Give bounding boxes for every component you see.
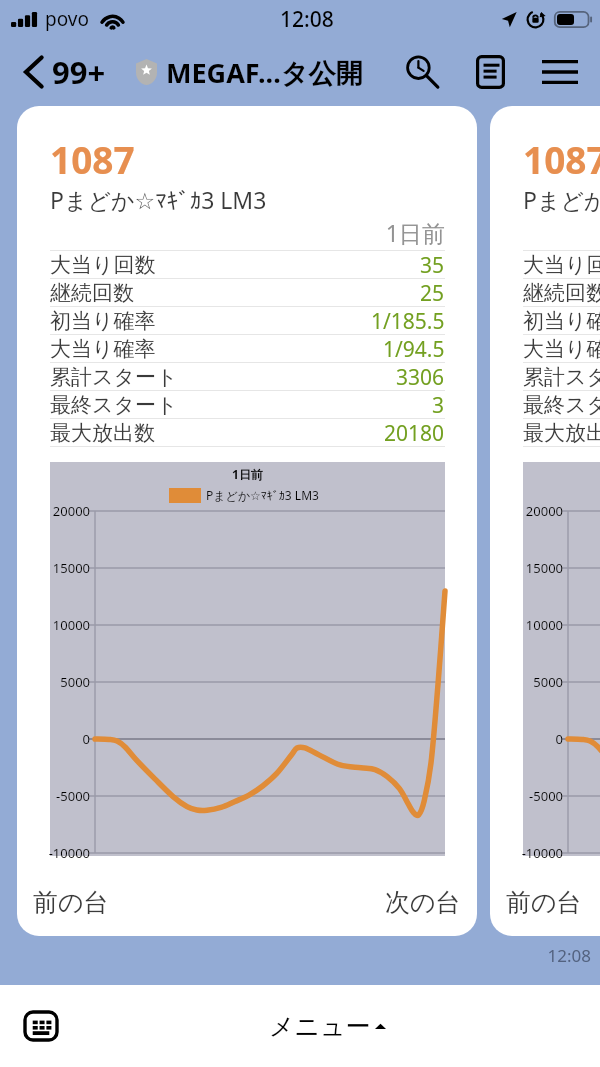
staticText: 20000 (41, 502, 90, 520)
staticText: -10000 (514, 844, 563, 862)
staticText: Pまどか☆ﾏｷﾞｶ3 LM3 (523, 184, 600, 215)
staticText: 1087 (50, 134, 135, 184)
staticText: 20180 (384, 419, 445, 446)
button[interactable]: Search (397, 47, 447, 97)
staticText: 大当り回数 (523, 252, 600, 278)
staticText: -5000 (514, 787, 563, 805)
staticText: 1/185.5 (371, 307, 445, 334)
button[interactable]: 前の台 (29, 879, 113, 926)
staticText: Pまどか☆ﾏｷﾞｶ3 LM3 (50, 184, 267, 215)
staticText: -5000 (41, 787, 90, 805)
staticText: 初当り確率 (523, 308, 600, 334)
staticText: povo (45, 6, 89, 32)
staticText: 前の台 (506, 887, 582, 918)
staticText: 大当り確率 (523, 336, 600, 362)
staticText: 3 (432, 391, 445, 418)
staticText: 0 (41, 730, 90, 748)
staticText: 1087 (523, 134, 600, 184)
staticText: -10000 (41, 844, 90, 862)
button[interactable]: 前の台 (502, 879, 586, 926)
staticText: 15000 (41, 559, 90, 577)
staticText: 1日前 (50, 466, 445, 482)
button[interactable]: Notes (467, 49, 513, 95)
staticText: 12:08 (280, 5, 334, 34)
staticText: 大当り回数 (50, 252, 156, 278)
staticText: 10000 (41, 616, 90, 634)
staticText: 35 (420, 251, 445, 278)
staticText: 25 (420, 279, 445, 306)
staticText: MEGAF...タ公開 (166, 54, 363, 91)
staticText: 次の台 (385, 887, 461, 918)
staticText: 0 (514, 730, 563, 748)
staticText: 99+ (52, 51, 106, 93)
staticText: 20000 (514, 502, 563, 520)
staticText: 3306 (396, 363, 445, 390)
staticText: 継続回数 (50, 280, 134, 306)
button[interactable]: メニュー (261, 1003, 394, 1050)
staticText: 最終スタート (50, 392, 178, 418)
staticText: 1/94.5 (383, 335, 445, 362)
staticText: 累計スタート (50, 364, 178, 390)
staticText: 12:08 (0, 944, 591, 967)
staticText: 5000 (514, 673, 563, 691)
staticText: 初当り確率 (50, 308, 156, 334)
staticText: 累計スタート (523, 364, 600, 390)
button[interactable]: Menu (537, 49, 583, 95)
button[interactable]: 次の台 (381, 879, 465, 926)
staticText: 5000 (41, 673, 90, 691)
staticText: Pまどか☆ﾏｷﾞｶ3 LM3 (206, 487, 319, 503)
staticText: 15000 (514, 559, 563, 577)
staticText: 前の台 (33, 887, 109, 918)
staticText: 最終スタート (523, 392, 600, 418)
staticText: 最大放出数 (523, 420, 600, 446)
staticText: 1日前 (50, 217, 445, 248)
staticText: メニュー (269, 1011, 371, 1042)
staticText: 最大放出数 (50, 420, 155, 446)
staticText: 継続回数 (523, 280, 600, 306)
button[interactable]: 99+ (22, 45, 108, 99)
staticText: 10000 (514, 616, 563, 634)
button[interactable]: Keyboard (18, 1003, 64, 1049)
staticText: 大当り確率 (50, 336, 156, 362)
